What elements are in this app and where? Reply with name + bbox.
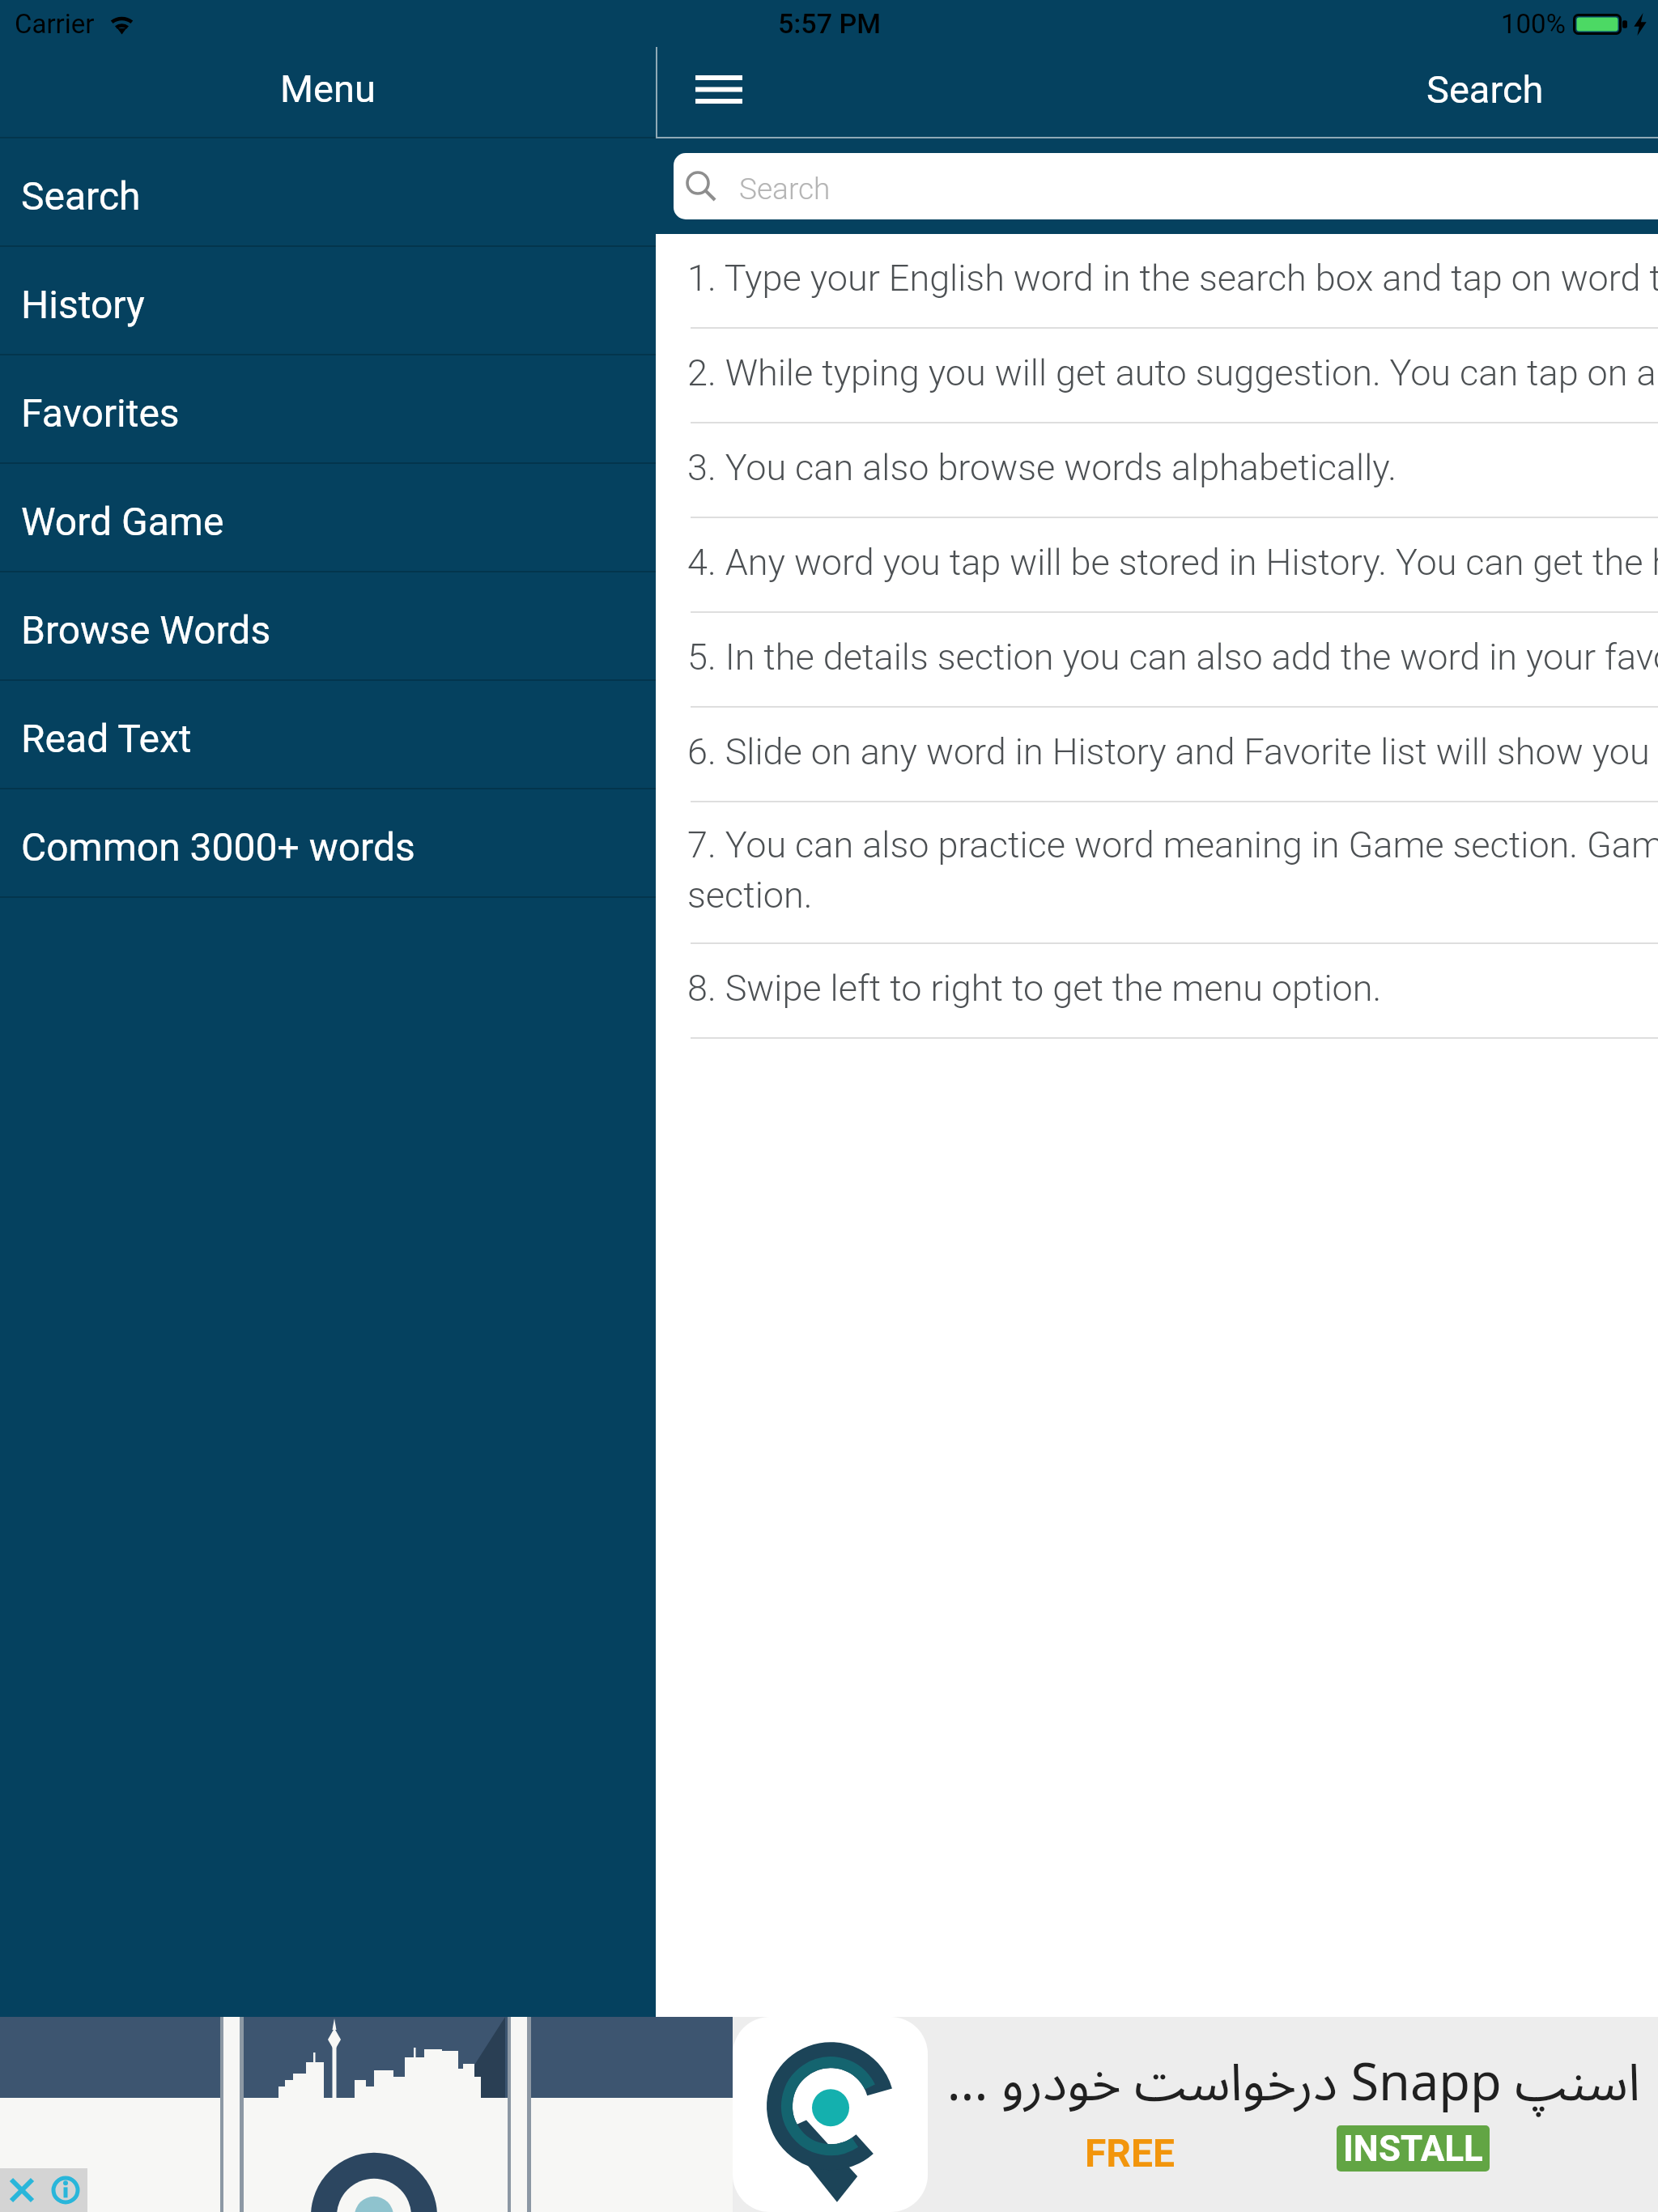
staticText: 3. You can also browse words alphabetica…: [687, 446, 1658, 489]
button[interactable]: Search: [0, 138, 656, 247]
staticText: Favorites: [21, 390, 180, 436]
staticText: Browse Words: [21, 607, 271, 653]
button[interactable]: 5. In the details section you can also a…: [656, 613, 1658, 708]
button[interactable]: Common 3000+ words: [0, 789, 656, 898]
staticText: Read Text: [21, 716, 192, 761]
button[interactable]: Close ad: [0, 2168, 44, 2212]
staticText: 8. Swipe left to right to get the menu o…: [687, 967, 1658, 1010]
staticText: 100%: [1501, 8, 1566, 40]
staticText: اسنپ Snapp درخواست خودرو ...: [946, 2030, 1640, 2138]
button[interactable]: 8. Swipe left to right to get the menu o…: [656, 944, 1658, 1039]
staticText: Carrier: [15, 8, 95, 40]
staticText: 5:57 PM: [778, 7, 881, 40]
button[interactable]: 3. You can also browse words alphabetica…: [656, 423, 1658, 518]
staticText: Search: [21, 173, 141, 219]
button[interactable]: اسنپ Snapp درخواست خودرو ...: [0, 2017, 1658, 2212]
staticText: INSTALL: [1343, 2128, 1483, 2170]
staticText: 5. In the details section you can also a…: [687, 636, 1658, 678]
staticText: Common 3000+ words: [21, 824, 415, 870]
button[interactable]: 1. Type your English word in the search …: [656, 234, 1658, 329]
button[interactable]: Open navigation menu: [664, 46, 773, 133]
button[interactable]: 7. You can also practice word meaning in…: [656, 802, 1658, 944]
staticText: Search: [739, 172, 831, 206]
button[interactable]: 4. Any word you tap will be stored in Hi…: [656, 518, 1658, 613]
staticText: 7. You can also practice word meaning in…: [687, 823, 1658, 917]
staticText: Search: [1426, 67, 1544, 112]
staticText: Menu: [280, 66, 376, 111]
staticText: 2. While typing you will get auto sugges…: [687, 351, 1658, 394]
button[interactable]: Favorites: [0, 355, 656, 464]
button[interactable]: Read Text: [0, 681, 656, 789]
staticText: 4. Any word you tap will be stored in Hi…: [687, 541, 1658, 584]
button[interactable]: Search: [674, 153, 1658, 219]
button[interactable]: Browse Words: [0, 572, 656, 681]
staticText: 1. Type your English word in the search …: [687, 257, 1658, 300]
button[interactable]: 6. Slide on any word in History and Favo…: [656, 708, 1658, 802]
button[interactable]: INSTALL: [1337, 2125, 1490, 2172]
staticText: FREE: [1085, 2130, 1175, 2176]
staticText: Word Game: [21, 499, 224, 544]
button[interactable]: 2. While typing you will get auto sugges…: [656, 329, 1658, 423]
staticText: 6. Slide on any word in History and Favo…: [687, 730, 1658, 773]
button[interactable]: Word Game: [0, 464, 656, 572]
button[interactable]: History: [0, 247, 656, 355]
staticText: History: [21, 282, 145, 327]
button[interactable]: Ad information: [44, 2168, 87, 2212]
